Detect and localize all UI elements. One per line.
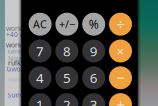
staticText: 7 xyxy=(36,42,44,60)
button[interactable]: 2 xyxy=(55,93,78,106)
staticText: % xyxy=(89,16,99,32)
staticText: Ngu xyxy=(8,54,21,63)
button[interactable]: % xyxy=(82,13,105,36)
button[interactable]: 8 xyxy=(55,39,78,62)
staticText: +/− xyxy=(59,17,75,31)
staticText: cano xyxy=(8,47,23,55)
button[interactable]: 3 xyxy=(82,93,105,106)
staticText: 6 xyxy=(90,69,98,87)
staticText: 1 xyxy=(36,96,44,106)
staticText: Suev xyxy=(7,91,23,99)
button[interactable]: × xyxy=(109,39,132,62)
button[interactable]: 9 xyxy=(82,39,105,62)
button[interactable]: − xyxy=(109,66,132,89)
staticText: 5 xyxy=(63,69,71,87)
button[interactable]: 4 xyxy=(29,66,52,89)
staticText: Gwoo xyxy=(6,65,24,73)
button[interactable]: 7 xyxy=(29,39,52,62)
staticText: 3 xyxy=(90,96,98,106)
button[interactable]: +/− xyxy=(55,13,78,36)
button[interactable]: AC xyxy=(29,13,52,36)
staticText: rulk xyxy=(8,59,21,67)
staticText: × xyxy=(116,42,124,60)
staticText: 2 xyxy=(63,96,71,106)
staticText: AC xyxy=(33,17,47,31)
staticText: ÷ xyxy=(116,14,124,34)
button[interactable]: ÷ xyxy=(109,13,132,36)
staticText: − xyxy=(116,68,124,88)
staticText: work xyxy=(6,41,22,49)
button[interactable]: 1 xyxy=(29,93,52,106)
staticText: 9 xyxy=(90,42,98,60)
staticText: 8 xyxy=(63,42,71,60)
staticText: 4 xyxy=(36,69,44,87)
staticText: + xyxy=(116,95,124,106)
staticText: +40 d xyxy=(6,30,24,39)
button[interactable]: 6 xyxy=(82,66,105,89)
button[interactable]: + xyxy=(109,93,132,106)
button[interactable]: 5 xyxy=(55,66,78,89)
staticText: more xyxy=(8,76,21,83)
staticText: work xyxy=(6,24,22,33)
